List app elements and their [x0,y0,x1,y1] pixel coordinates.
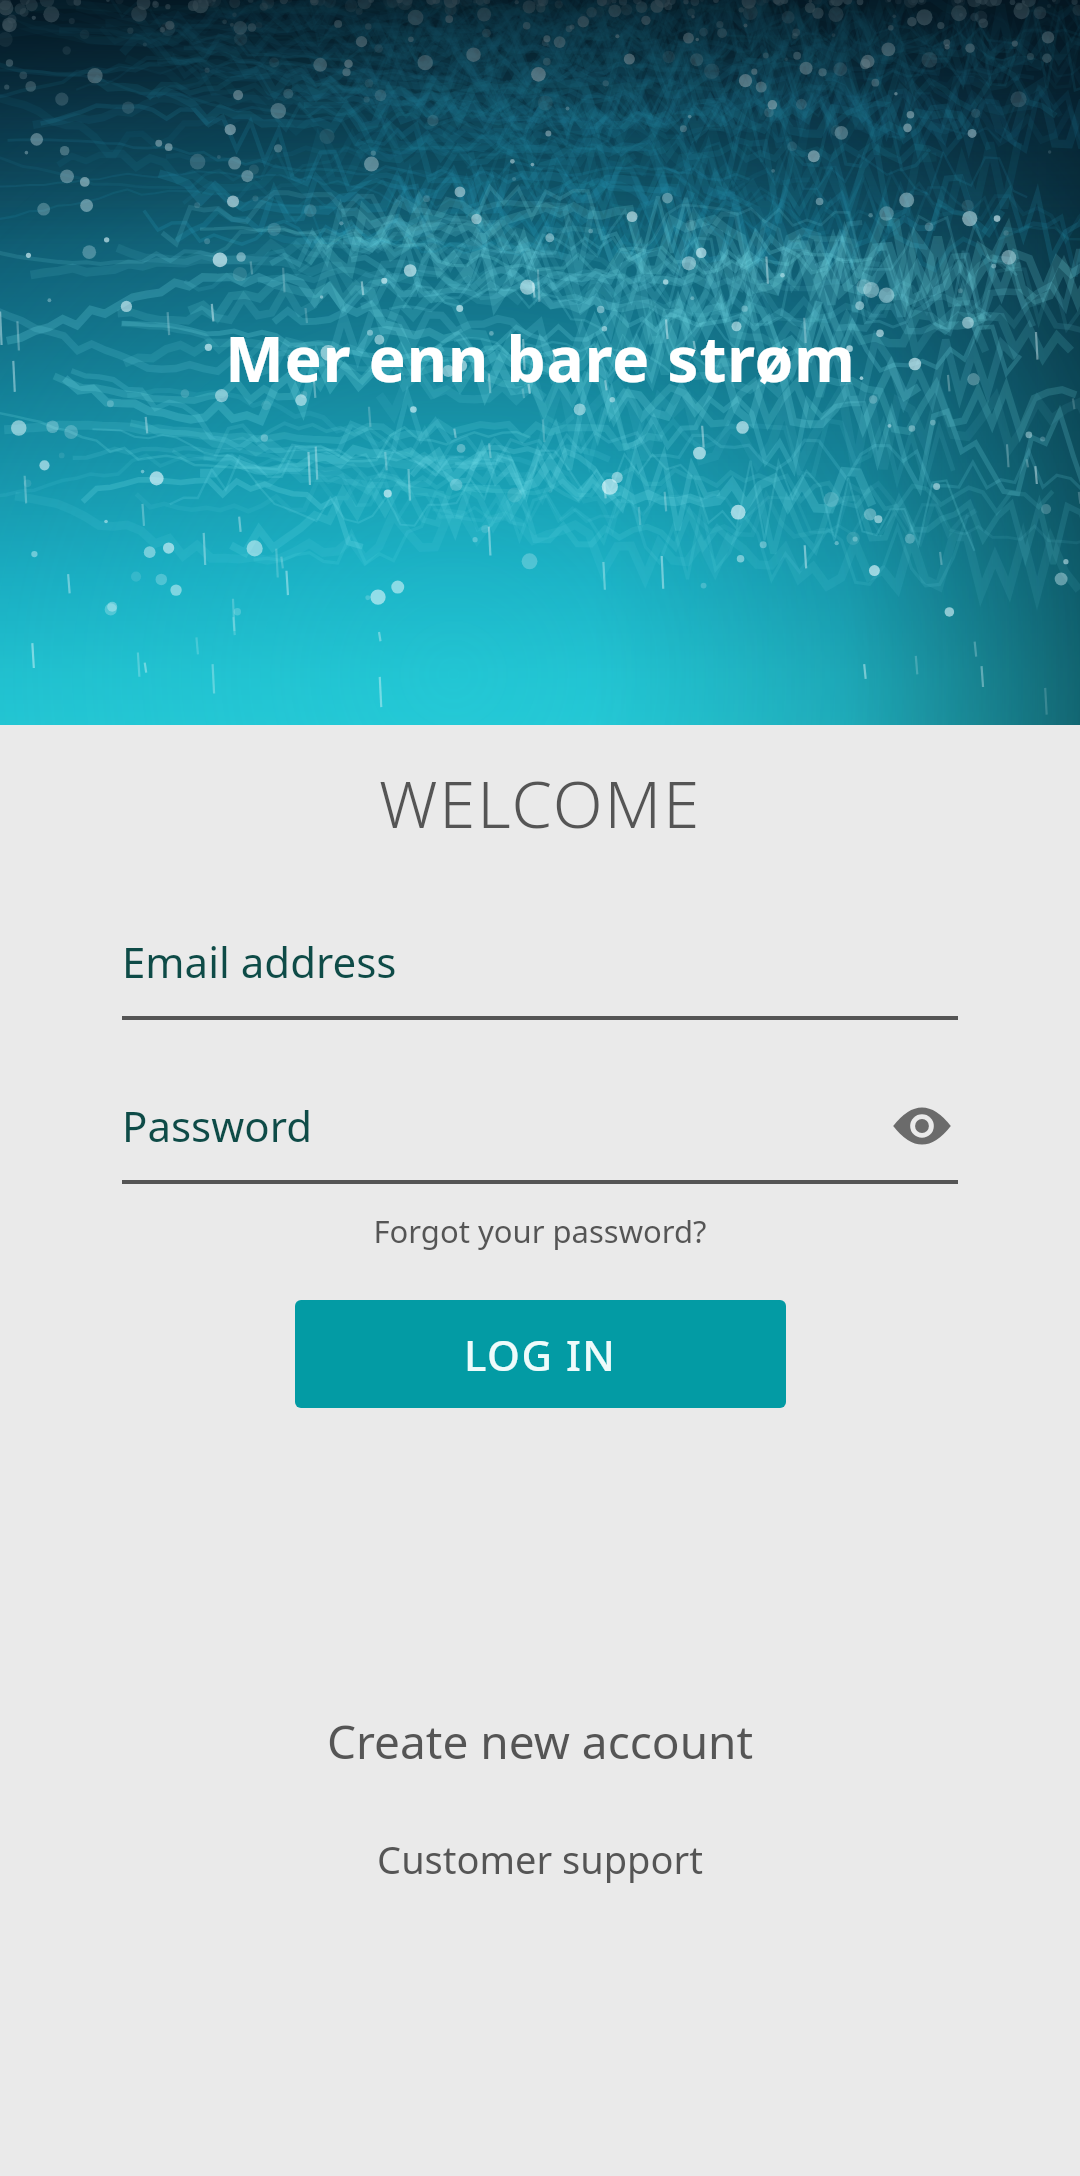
staticText: Customer support [0,1833,1080,1885]
button[interactable]: Customer support [0,1827,1080,1891]
staticText: Password [122,1097,312,1154]
button[interactable]: Email address [122,924,958,1020]
staticText: Forgot your password? [0,1210,1080,1252]
staticText: Mer enn bare strøm [225,316,856,400]
button[interactable]: Create new account [0,1704,1080,1779]
button[interactable]: LOG IN [295,1300,786,1408]
staticText: LOG IN [464,1326,617,1383]
staticText: Create new account [0,1710,1080,1773]
staticText: Email address [122,933,397,990]
button[interactable]: Forgot your password? [0,1204,1080,1258]
button[interactable]: Show password [886,1090,958,1162]
staticText: WELCOME [0,759,1080,848]
button[interactable]: Password [122,1088,958,1184]
